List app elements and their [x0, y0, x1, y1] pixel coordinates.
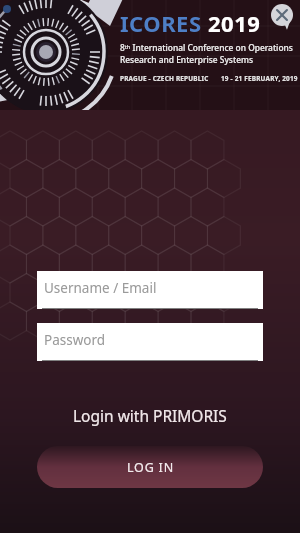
staticText: Username / Email: [44, 279, 157, 297]
staticText: ICORES: [120, 8, 208, 38]
staticText: 2019: [208, 8, 261, 38]
button[interactable]: LOG IN: [37, 446, 263, 488]
staticText: PRAGUE - CZECH REPUBLIC: [120, 74, 209, 83]
button[interactable]: Close: [268, 1, 296, 29]
button[interactable]: Password: [37, 323, 263, 361]
staticText: Login with PRIMORIS: [73, 405, 227, 426]
staticText: 19 - 21 FEBRUARY, 2019: [221, 74, 298, 83]
button[interactable]: Login with PRIMORIS: [37, 403, 263, 428]
staticText: LOG IN: [127, 459, 174, 476]
staticText: Password: [44, 331, 106, 349]
staticText: Research and Enterprise Systems: [120, 54, 253, 65]
staticText: 8ᵗʰ International Conference on Operatio…: [120, 42, 293, 53]
button[interactable]: Username / Email: [37, 271, 263, 309]
